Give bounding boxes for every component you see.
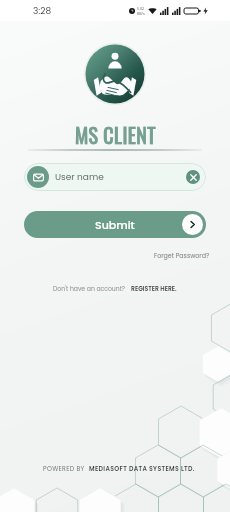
staticText: POWERED BY <box>43 464 85 473</box>
button[interactable]: Submit <box>24 211 206 238</box>
button[interactable]: User name <box>24 163 206 191</box>
button[interactable]: Forget Password? <box>152 249 212 262</box>
staticText: MEDIASOFT DATA SYSTEMS LTD. <box>89 464 195 473</box>
staticText: KB/s <box>137 11 145 16</box>
staticText: 3:28 <box>33 5 52 18</box>
staticText: 5.02 <box>137 6 145 11</box>
staticText: Don't have an account? <box>53 285 126 294</box>
staticText: Submit <box>95 217 135 232</box>
button[interactable]: Clear <box>186 170 200 184</box>
button[interactable]: REGISTER HERE. <box>131 285 177 294</box>
staticText: User name <box>55 171 104 184</box>
staticText: MS CLIENT <box>75 120 156 150</box>
